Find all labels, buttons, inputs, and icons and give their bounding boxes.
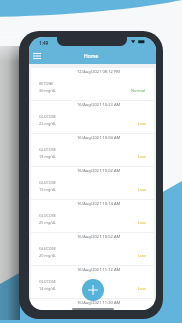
button[interactable]: 16/Aug/2021 10:02 AM [31, 167, 154, 199]
staticText: GLUCOSE [39, 246, 56, 251]
button[interactable]: Add reading [82, 279, 104, 301]
staticText: Low [138, 253, 146, 258]
button[interactable]: 16/Aug/2021 10:23 AM [31, 101, 154, 133]
staticText: GLUCOSE [39, 114, 56, 119]
staticText: 16/Aug/2021 11:30 AM [77, 300, 121, 306]
staticText: 1:49 [39, 40, 49, 46]
staticText: 14 mg/dL [39, 286, 56, 291]
staticText: GLUCOSE [39, 180, 56, 185]
staticText: 16/Aug/2021 10:52 AM [77, 234, 121, 240]
staticText: 25 mg/dL [39, 220, 56, 225]
staticText: Low [138, 187, 146, 192]
staticText: KETONE [39, 81, 54, 86]
staticText: 20 mg/dL [39, 253, 56, 258]
staticText: Normal [131, 88, 146, 93]
button[interactable]: 16/Aug/2021 10:14 AM [31, 200, 154, 232]
staticText: 16/Aug/2021 11:12 AM [77, 267, 121, 273]
button[interactable]: 12/Aug/2021 08:12 PM [31, 68, 154, 100]
staticText: 30 mg/dL [39, 88, 56, 93]
button[interactable]: Open navigation menu [30, 49, 44, 63]
button[interactable]: 16/Aug/2021 11:30 AM [31, 299, 154, 310]
staticText: 16/Aug/2021 10:02 AM [77, 168, 121, 174]
staticText: Low [138, 286, 146, 291]
staticText: 19 mg/dL [39, 187, 56, 192]
staticText: GLUCOSE [39, 213, 56, 218]
staticText: Low [138, 220, 146, 225]
staticText: 16/Aug/2021 10:23 AM [77, 102, 121, 108]
staticText: Low [138, 121, 146, 126]
staticText: 22 mg/dL [39, 121, 56, 126]
staticText: GLUCOSE [39, 279, 56, 284]
staticText: 18 mg/dL [39, 154, 56, 159]
staticText: 16/Aug/2021 10:04 AM [77, 135, 121, 141]
staticText: Home [84, 53, 99, 60]
staticText: 16/Aug/2021 10:14 AM [77, 201, 121, 207]
staticText: 12/Aug/2021 08:12 PM [77, 69, 121, 75]
button[interactable]: 16/Aug/2021 10:04 AM [31, 134, 154, 166]
button[interactable]: 16/Aug/2021 11:12 AM [31, 266, 154, 298]
button[interactable]: 16/Aug/2021 10:52 AM [31, 233, 154, 265]
staticText: Low [138, 154, 146, 159]
staticText: GLUCOSE [39, 147, 56, 152]
